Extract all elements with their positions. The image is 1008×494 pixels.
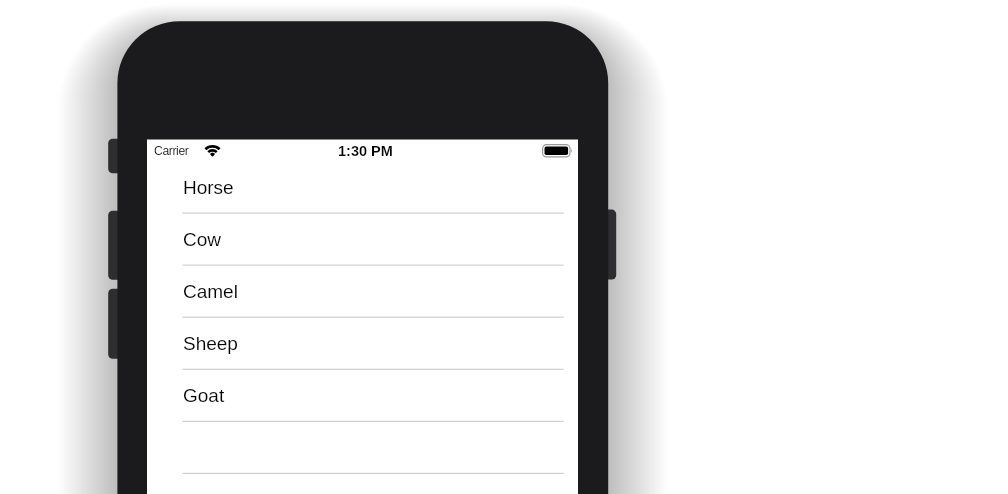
staticText: Cow — [183, 229, 222, 250]
staticText: 1:30 PM — [338, 143, 393, 159]
button[interactable] — [147, 421, 578, 473]
button[interactable]: Goat — [147, 369, 578, 421]
staticText: Sheep — [183, 333, 238, 354]
button[interactable]: Sheep — [147, 317, 578, 369]
staticText: Horse — [183, 177, 234, 198]
button[interactable]: Horse — [147, 161, 578, 213]
button[interactable] — [147, 473, 578, 494]
staticText: Goat — [183, 385, 225, 406]
button[interactable]: Camel — [147, 265, 578, 317]
staticText: Carrier — [154, 144, 189, 158]
staticText: Camel — [183, 281, 238, 302]
button[interactable]: Cow — [147, 213, 578, 265]
